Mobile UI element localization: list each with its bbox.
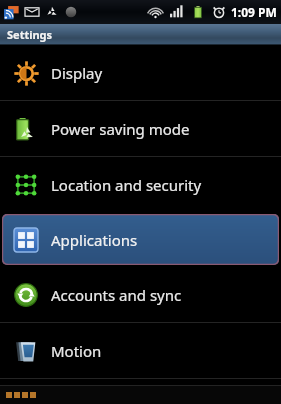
staticText: Display	[51, 63, 103, 83]
button[interactable]: Accounts and sync	[0, 267, 281, 322]
button[interactable]: Applications	[0, 212, 281, 267]
button[interactable]: Motion	[0, 323, 281, 378]
staticText: Location and security	[51, 175, 202, 195]
staticText: Accounts and sync	[51, 285, 182, 305]
button[interactable]: Location and security	[0, 157, 281, 212]
staticText: Settings	[7, 27, 53, 42]
staticText: 1:09 PM	[231, 4, 277, 20]
staticText: Power saving mode	[51, 119, 190, 139]
button[interactable]: Display	[0, 45, 281, 100]
staticText: Applications	[51, 230, 138, 250]
button[interactable]: Power saving mode	[0, 101, 281, 156]
staticText: Motion	[51, 341, 102, 361]
